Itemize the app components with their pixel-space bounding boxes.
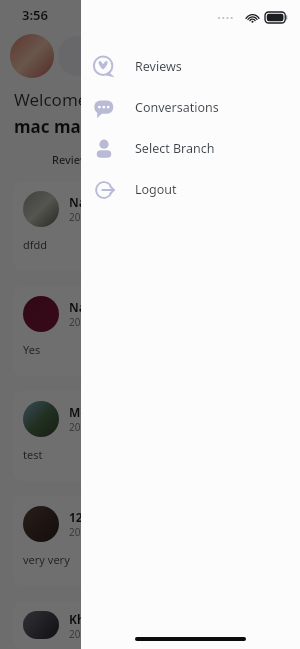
staticText: Select Branch — [135, 140, 215, 157]
button[interactable]: Reviews — [81, 46, 300, 87]
staticText: dfdd — [23, 237, 48, 252]
staticText: 2024-01-01 — [69, 525, 122, 539]
staticText: Yes — [23, 342, 41, 357]
staticText: Nada — [69, 299, 101, 315]
button[interactable]: Conversations — [81, 87, 300, 128]
staticText: Nadia — [69, 194, 105, 210]
button[interactable]: Nadia — [13, 181, 287, 271]
staticText: Khaled — [69, 611, 111, 627]
staticText: Reviews — [52, 152, 95, 167]
staticText: Welcome — [14, 88, 88, 111]
staticText: Reviews — [135, 58, 182, 75]
staticText: Moha — [69, 404, 103, 420]
button[interactable]: Moha — [13, 391, 287, 481]
button[interactable]: Select Branch — [81, 128, 300, 169]
staticText: mac mac — [14, 115, 90, 138]
staticText: test — [23, 447, 43, 462]
button[interactable]: 1234 — [13, 496, 287, 586]
staticText: 3:56 — [22, 6, 48, 24]
staticText: Logout — [135, 181, 177, 198]
staticText: 2024-01-01 — [69, 420, 122, 434]
staticText: Conversations — [135, 99, 219, 116]
button[interactable]: Khaled — [13, 601, 287, 649]
staticText: 2024-01-01 — [69, 627, 122, 639]
staticText: very very — [23, 552, 70, 567]
staticText: 2024-01-01 — [69, 315, 122, 329]
button[interactable]: Logout — [81, 169, 300, 210]
staticText: 1234 — [69, 509, 97, 525]
staticText: 2024-01-01 — [69, 210, 122, 224]
button[interactable]: Nada — [13, 286, 287, 376]
